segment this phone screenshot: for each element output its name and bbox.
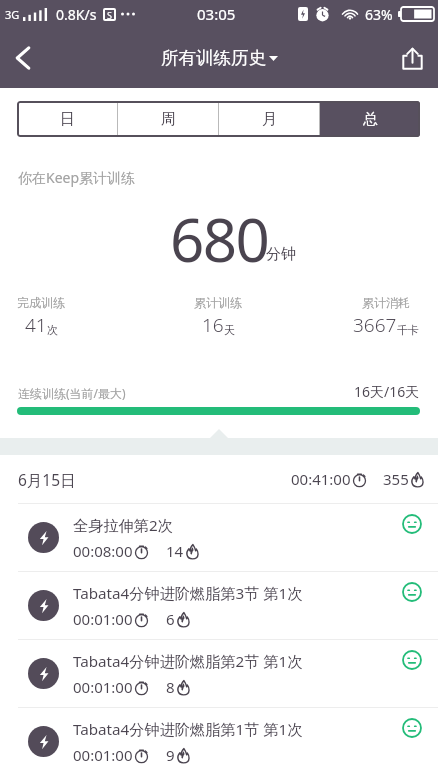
staticText: 9	[166, 745, 175, 765]
staticText: 完成训练	[17, 295, 65, 310]
button[interactable]: Mood	[400, 580, 424, 604]
button[interactable]: Tabata4分钟进阶燃脂第3节 第1次	[0, 571, 438, 639]
staticText: 355	[383, 469, 409, 489]
staticText: 连续训练(当前/最大)	[18, 385, 126, 401]
staticText: 3667	[353, 312, 397, 338]
staticText: 00:01:00	[73, 677, 133, 697]
button[interactable]: 周	[118, 101, 218, 137]
staticText: 累计训练	[194, 295, 242, 310]
staticText: 16	[202, 312, 224, 338]
staticText: 00:01:00	[73, 609, 133, 629]
staticText: 全身拉伸第2次	[73, 515, 173, 536]
staticText: 680	[170, 198, 269, 280]
staticText: 00:08:00	[73, 541, 133, 561]
staticText: 千卡	[397, 323, 419, 337]
staticText: 累计消耗	[362, 295, 410, 310]
button[interactable]: Share	[389, 35, 435, 81]
button[interactable]: Tabata4分钟进阶燃脂第2节 第1次	[0, 639, 438, 707]
staticText: 00:01:00	[73, 745, 133, 765]
button[interactable]: Mood	[400, 716, 424, 740]
button[interactable]: Mood	[400, 512, 424, 536]
button[interactable]: Mood	[400, 648, 424, 672]
button[interactable]: 总	[320, 101, 420, 137]
button[interactable]: 全身拉伸第2次	[0, 503, 438, 571]
staticText: 日	[60, 110, 75, 129]
staticText: 你在Keep累计训练	[18, 168, 136, 187]
staticText: 03:05	[197, 4, 236, 24]
staticText: 分钟	[266, 245, 296, 264]
staticText: 月	[262, 110, 277, 129]
staticText: Tabata4分钟进阶燃脂第3节 第1次	[73, 583, 303, 604]
staticText: 所有训练历史	[161, 47, 266, 69]
staticText: 3G	[5, 7, 20, 22]
staticText: 6	[166, 609, 175, 629]
staticText: 14	[166, 541, 184, 561]
staticText: 63%	[365, 5, 393, 24]
staticText: 次	[47, 323, 58, 337]
button[interactable]: 所有训练历史	[161, 47, 278, 69]
staticText: 41	[25, 312, 47, 338]
staticText: 16天/16天	[354, 382, 420, 401]
button[interactable]: Back	[0, 35, 46, 81]
staticText: Tabata4分钟进阶燃脂第2节 第1次	[73, 651, 303, 672]
button[interactable]: 日	[17, 101, 117, 137]
staticText: 周	[161, 110, 176, 129]
staticText: S	[107, 9, 112, 21]
staticText: 天	[224, 323, 235, 337]
button[interactable]: 月	[219, 101, 319, 137]
staticText: 0.8K/s	[56, 5, 97, 24]
staticText: 00:41:00	[291, 469, 351, 489]
staticText: Tabata4分钟进阶燃脂第1节 第1次	[73, 719, 303, 740]
staticText: 6月15日	[18, 469, 76, 490]
button[interactable]: Tabata4分钟进阶燃脂第1节 第1次	[0, 707, 438, 775]
staticText: 总	[363, 110, 378, 129]
staticText: 8	[166, 677, 175, 697]
